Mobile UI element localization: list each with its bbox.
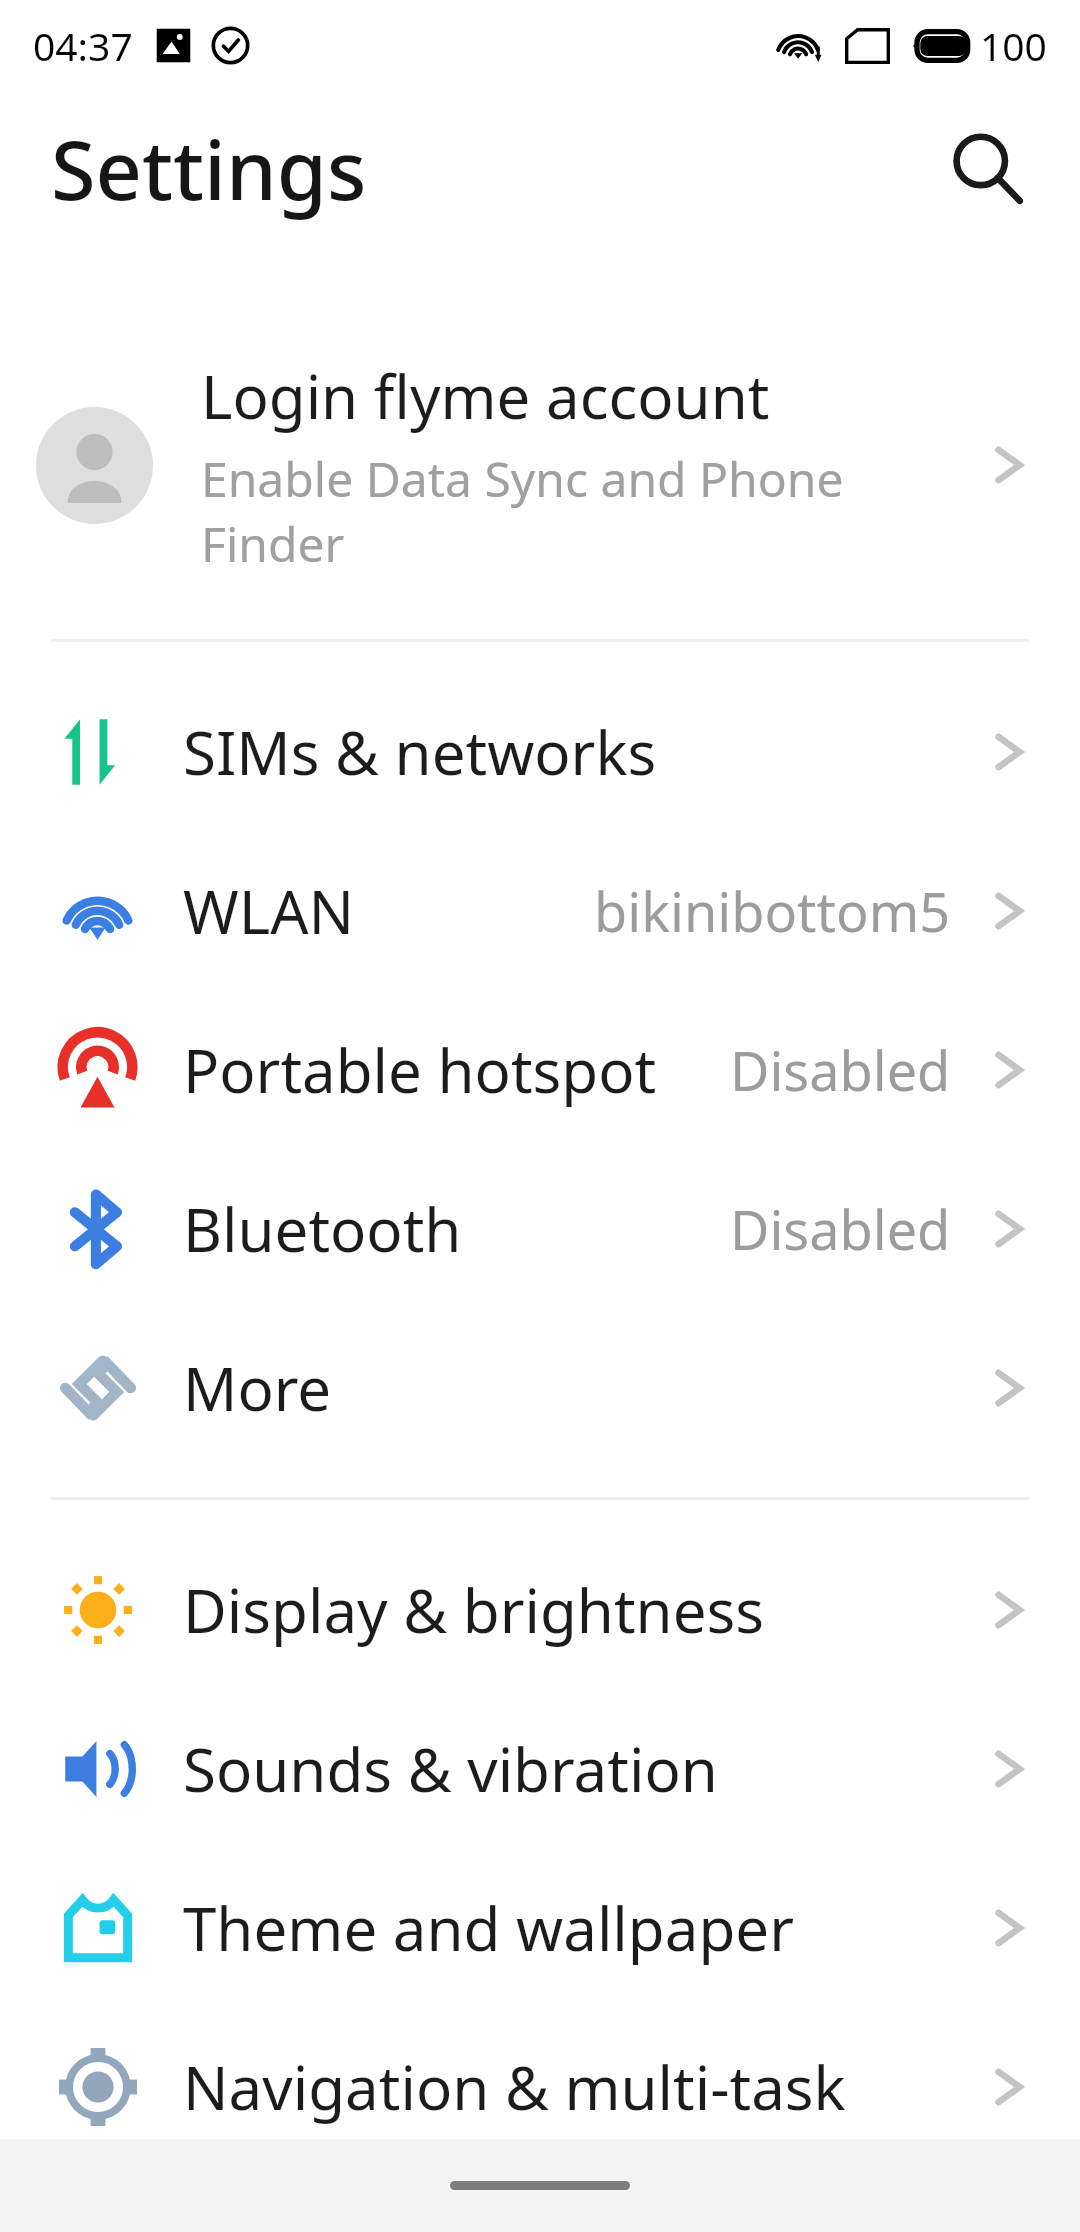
button[interactable]: Portable hotspot: [0, 990, 1080, 1149]
staticText: 100: [980, 19, 1047, 72]
button[interactable]: Login flyme account: [0, 327, 1080, 603]
staticText: Theme and wallpaper: [183, 1887, 990, 1969]
button[interactable]: Display & brightness: [0, 1530, 1080, 1689]
staticText: 04:37: [33, 19, 133, 72]
staticText: Disabled: [730, 1192, 951, 1266]
button[interactable]: Theme and wallpaper: [0, 1848, 1080, 2007]
staticText: Settings: [51, 113, 367, 223]
staticText: More: [183, 1347, 990, 1429]
staticText: SIMs & networks: [183, 711, 990, 793]
button[interactable]: More: [0, 1308, 1080, 1467]
staticText: Bluetooth: [183, 1188, 730, 1270]
button[interactable]: Bluetooth: [0, 1149, 1080, 1308]
staticText: Notifications & status bar: [183, 2166, 990, 2232]
button[interactable]: Sounds & vibration: [0, 1689, 1080, 1848]
staticText: Sounds & vibration: [183, 1728, 990, 1810]
staticText: Portable hotspot: [183, 1029, 730, 1111]
staticText: Display & brightness: [183, 1569, 990, 1651]
button[interactable]: Search: [933, 114, 1041, 222]
button[interactable]: Navigation & multi-task: [0, 2007, 1080, 2166]
staticText: Navigation & multi-task: [183, 2046, 990, 2128]
staticText: Login flyme account: [201, 355, 770, 437]
button[interactable]: Notifications & status bar: [0, 2166, 1080, 2232]
staticText: Disabled: [730, 1033, 951, 1107]
staticText: bikinibottom5: [594, 874, 951, 948]
staticText: WLAN: [183, 870, 594, 952]
button[interactable]: SIMs & networks: [0, 672, 1080, 831]
staticText: Enable Data Sync and Phone Finder: [201, 446, 990, 576]
button[interactable]: WLAN: [0, 831, 1080, 990]
